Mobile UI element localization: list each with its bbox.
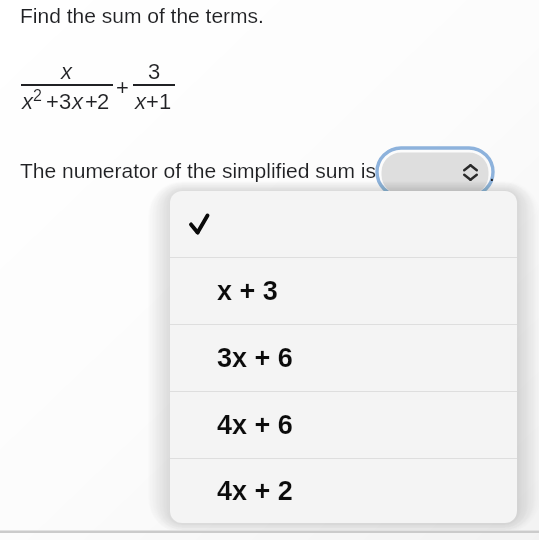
- staticText: +: [116, 75, 129, 100]
- staticText: 3: [59, 89, 72, 114]
- staticText: x: [135, 89, 146, 114]
- staticText: 3: [148, 59, 161, 84]
- staticText: Find the sum of the terms.: [20, 4, 264, 27]
- button[interactable]: 3x + 6: [170, 325, 517, 391]
- staticText: 1: [159, 89, 172, 114]
- staticText: The numerator of the simplified sum is: [20, 159, 376, 182]
- staticText: 3x + 6: [217, 343, 293, 373]
- staticText: x + 3: [217, 276, 278, 306]
- button[interactable]: 4x + 6: [170, 392, 517, 458]
- staticText: +: [85, 89, 98, 114]
- staticText: 2: [97, 89, 110, 114]
- button[interactable]: Blank option, selected: [170, 191, 517, 257]
- staticText: x: [61, 59, 72, 84]
- staticText: 2: [33, 87, 42, 105]
- staticText: 4x + 6: [217, 410, 293, 440]
- staticText: 4x + 2: [217, 476, 293, 506]
- button[interactable]: 4x + 2: [170, 459, 517, 523]
- staticText: x: [72, 89, 83, 114]
- button[interactable]: x + 3: [170, 258, 517, 324]
- staticText: +: [146, 89, 159, 114]
- staticText: .: [489, 162, 495, 185]
- staticText: x: [22, 89, 33, 114]
- staticText: +: [46, 89, 59, 114]
- button[interactable]: Answer choices, select: [374, 145, 498, 199]
